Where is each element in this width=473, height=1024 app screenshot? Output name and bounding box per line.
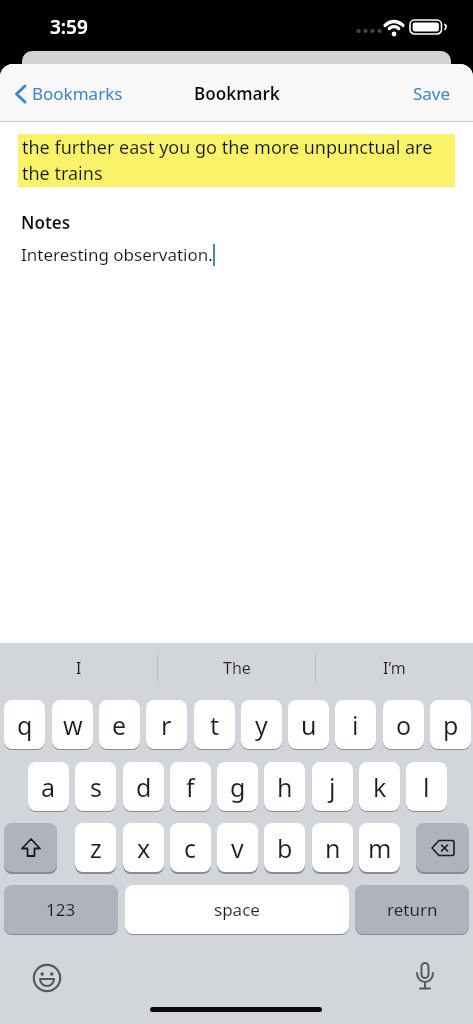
staticText: s xyxy=(90,770,102,804)
staticText: u xyxy=(301,708,317,742)
staticText: 3:59 xyxy=(50,14,88,40)
button[interactable]: w xyxy=(52,700,93,749)
staticText: p xyxy=(443,708,459,742)
staticText: return xyxy=(387,898,438,921)
staticText: h xyxy=(277,770,293,804)
button[interactable]: e xyxy=(99,700,140,749)
button[interactable]: q xyxy=(4,700,45,749)
button[interactable] xyxy=(4,823,57,872)
staticText: 123 xyxy=(46,898,76,921)
staticText: l xyxy=(423,770,430,804)
button[interactable] xyxy=(416,823,469,872)
button[interactable]: o xyxy=(383,700,424,749)
button[interactable]: I’m xyxy=(316,643,473,693)
staticText: e xyxy=(112,708,127,742)
button[interactable]: I xyxy=(0,643,157,693)
staticText: k xyxy=(373,770,387,804)
staticText: m xyxy=(368,831,392,865)
button[interactable]: j xyxy=(312,762,353,811)
button[interactable]: h xyxy=(264,762,305,811)
button[interactable]: g xyxy=(217,762,258,811)
button[interactable] xyxy=(403,956,447,1000)
button[interactable]: a xyxy=(28,762,69,811)
staticText: t xyxy=(210,708,220,742)
staticText: q xyxy=(17,708,33,742)
staticText: r xyxy=(161,708,172,742)
button[interactable]: t xyxy=(194,700,235,749)
staticText: g xyxy=(230,770,246,804)
button[interactable]: r xyxy=(146,700,187,749)
staticText: j xyxy=(329,770,336,804)
button[interactable]: space xyxy=(125,885,349,934)
staticText: b xyxy=(277,831,293,865)
button[interactable]: v xyxy=(217,823,258,872)
button[interactable]: l xyxy=(406,762,447,811)
staticText: c xyxy=(184,831,197,865)
button[interactable]: u xyxy=(288,700,329,749)
staticText: Save xyxy=(413,82,451,105)
button[interactable]: Save xyxy=(407,76,457,111)
staticText: d xyxy=(136,770,152,804)
staticText: Notes xyxy=(21,211,71,234)
button[interactable]: k xyxy=(359,762,400,811)
button[interactable]: d xyxy=(123,762,164,811)
staticText: The xyxy=(223,657,251,679)
staticText: x xyxy=(137,831,151,865)
button[interactable]: f xyxy=(170,762,211,811)
button[interactable]: c xyxy=(170,823,211,872)
staticText: i xyxy=(352,708,359,742)
staticText: I’m xyxy=(383,657,406,679)
staticText: Interesting observation. xyxy=(21,243,213,266)
staticText: o xyxy=(396,708,412,742)
button[interactable]: y xyxy=(241,700,282,749)
staticText: Bookmarks xyxy=(32,82,123,105)
staticText: z xyxy=(90,831,102,865)
staticText: y xyxy=(255,708,268,742)
staticText: v xyxy=(231,831,244,865)
button[interactable]: Bookmarks xyxy=(8,76,129,111)
button[interactable]: x xyxy=(123,823,164,872)
button[interactable]: 123 xyxy=(4,885,118,934)
staticText: f xyxy=(186,770,195,804)
button[interactable]: z xyxy=(75,823,116,872)
button[interactable]: return xyxy=(355,885,469,934)
staticText: n xyxy=(325,831,341,865)
button[interactable]: The xyxy=(158,643,315,693)
button[interactable]: i xyxy=(335,700,376,749)
button[interactable]: n xyxy=(312,823,353,872)
button[interactable]: m xyxy=(359,823,400,872)
staticText: Bookmark xyxy=(194,82,280,105)
button[interactable]: s xyxy=(75,762,116,811)
staticText: a xyxy=(41,770,56,804)
staticText: I xyxy=(76,657,82,679)
button[interactable]: b xyxy=(264,823,305,872)
button[interactable]: p xyxy=(430,700,471,749)
staticText: w xyxy=(63,708,83,742)
staticText: the further east you go the more unpunct… xyxy=(22,135,433,186)
staticText: space xyxy=(214,898,260,921)
button[interactable] xyxy=(25,956,69,1000)
